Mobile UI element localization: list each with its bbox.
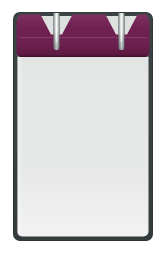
button[interactable]: Calendar notepad [0,0,168,270]
